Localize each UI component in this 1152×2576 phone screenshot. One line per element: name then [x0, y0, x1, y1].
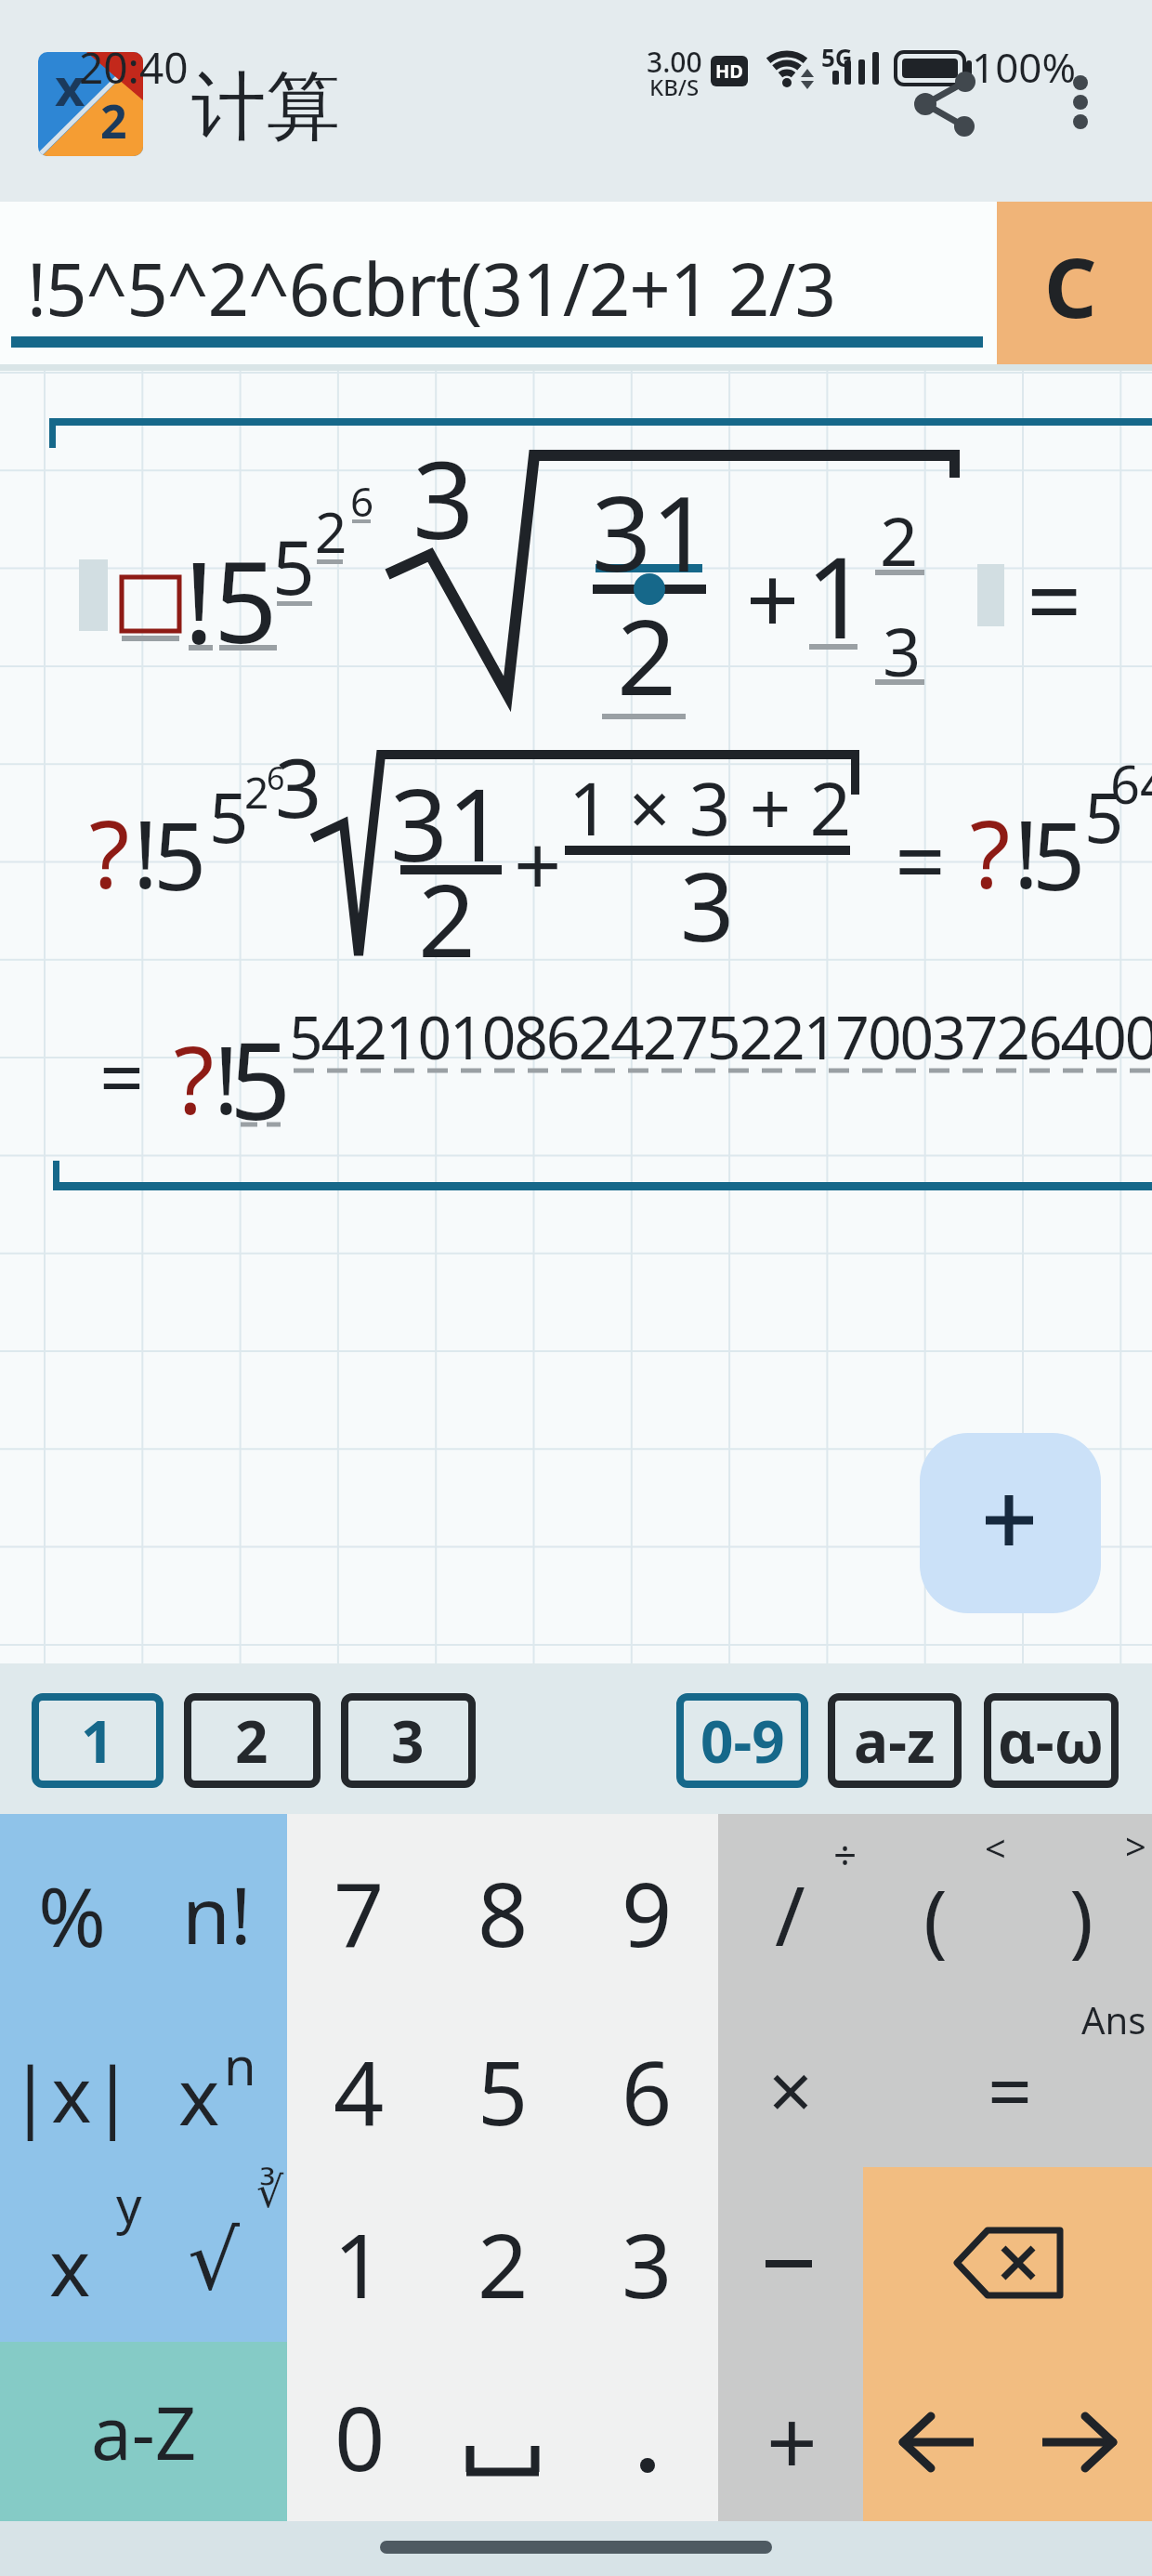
button[interactable] [718, 2345, 862, 2521]
staticText: 6 [267, 756, 285, 799]
button[interactable] [575, 1814, 719, 1991]
button[interactable] [718, 2167, 862, 2344]
staticText: 20:40 [79, 38, 189, 97]
button[interactable] [575, 1991, 719, 2167]
staticText: 5 [1032, 791, 1086, 917]
button[interactable] [287, 1814, 431, 1991]
staticText: 64 [1110, 748, 1152, 819]
button[interactable] [718, 1991, 862, 2167]
button[interactable] [718, 1814, 862, 1991]
button[interactable] [1008, 1814, 1152, 1991]
staticText: 0 [334, 2376, 386, 2496]
staticText: × [768, 2036, 814, 2142]
staticText: ? [89, 789, 130, 915]
staticText: 5 [272, 515, 315, 616]
staticText: a-Z [91, 2383, 197, 2481]
staticText: 3 [275, 730, 322, 842]
staticText: 2 [315, 493, 347, 570]
staticText: 1 × 3 + 2 [569, 758, 852, 857]
button[interactable] [920, 1433, 1101, 1613]
staticText: 6 [350, 473, 374, 529]
button[interactable] [988, 1697, 1115, 1784]
button[interactable] [1048, 63, 1113, 145]
staticText: 计算 [191, 60, 340, 154]
button[interactable] [287, 2345, 431, 2521]
staticText: ÷ [833, 1826, 857, 1882]
staticText: = [99, 1022, 145, 1128]
button[interactable] [0, 202, 997, 364]
button[interactable] [863, 2345, 1007, 2521]
staticText: y [116, 2170, 142, 2239]
button[interactable] [287, 1991, 431, 2167]
button[interactable] [345, 1697, 472, 1784]
staticText: % [38, 1860, 107, 1971]
button[interactable] [1008, 2167, 1152, 2344]
staticText: = [1027, 533, 1082, 665]
button[interactable] [431, 2167, 575, 2344]
staticText: 3 [680, 840, 735, 969]
button[interactable] [144, 1991, 287, 2167]
staticText: = [895, 798, 946, 920]
button[interactable] [863, 1814, 1007, 1991]
staticText: KB/S [649, 72, 700, 102]
button[interactable] [575, 2345, 719, 2521]
staticText: x [49, 2213, 91, 2319]
staticText: 3 [412, 424, 475, 571]
button[interactable] [287, 2167, 431, 2344]
staticText: α-ω [998, 1702, 1105, 1780]
staticText: 5 [153, 791, 207, 917]
button[interactable] [0, 1991, 144, 2167]
staticText: 1 [81, 1702, 114, 1780]
staticText: ∛ [256, 2167, 284, 2217]
staticText: !5^5^2^6cbrt(31/2+1 2/3 [27, 239, 836, 337]
staticText: = [988, 2036, 1033, 2142]
button[interactable] [906, 63, 988, 145]
staticText: 2 [235, 1702, 268, 1780]
staticText: 3 [622, 2203, 673, 2323]
staticText: 5 [229, 1005, 292, 1151]
staticText: 3 [883, 605, 922, 696]
button[interactable] [431, 2345, 575, 2521]
button[interactable] [0, 2167, 144, 2344]
staticText: n! [182, 1860, 252, 1966]
button[interactable] [997, 202, 1152, 364]
staticText: HD [715, 59, 743, 84]
button[interactable] [144, 1814, 287, 1991]
staticText: 4 [334, 2031, 385, 2150]
button[interactable] [0, 2345, 287, 2521]
staticText: 5 [214, 524, 278, 676]
staticText: 31 [592, 460, 712, 602]
button[interactable] [1008, 1991, 1152, 2167]
staticText: ! [133, 789, 158, 915]
staticText: 5 [209, 769, 249, 863]
staticText: 0-9 [700, 1702, 785, 1780]
staticText: ! [214, 1015, 239, 1141]
staticText: 7 [334, 1852, 385, 1972]
button[interactable] [188, 1697, 317, 1784]
button[interactable] [431, 1991, 575, 2167]
button[interactable] [144, 2167, 287, 2344]
staticText: n [224, 2030, 256, 2100]
staticText: 3 [391, 1702, 425, 1780]
staticText: + [746, 534, 800, 661]
button[interactable] [1008, 2345, 1152, 2521]
staticText: Ans [1081, 1994, 1146, 2044]
staticText: ) [1069, 1862, 1093, 1971]
staticText: 2 [617, 584, 677, 726]
staticText: 2 [478, 2203, 529, 2323]
button[interactable] [431, 1814, 575, 1991]
button[interactable] [831, 1697, 958, 1784]
staticText: 31 [390, 755, 505, 891]
button[interactable] [0, 1814, 144, 1991]
button[interactable] [863, 1991, 1007, 2167]
staticText: x [178, 2042, 220, 2148]
staticText: < [985, 1822, 1006, 1873]
staticText: 3.00 [647, 43, 702, 81]
button[interactable] [863, 2167, 1007, 2344]
staticText: 2 [418, 850, 476, 987]
button[interactable] [680, 1697, 805, 1784]
staticText: ! [1014, 789, 1039, 915]
button[interactable] [35, 1697, 160, 1784]
button[interactable] [575, 2167, 719, 2344]
staticText: 8 [478, 1852, 529, 1972]
